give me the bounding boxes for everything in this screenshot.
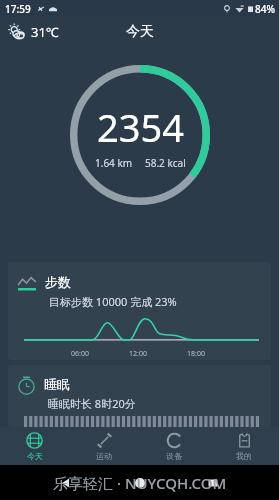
button[interactable]: Weather [7,22,59,42]
staticText: 睡眠时长 8时20分 [48,396,136,411]
other: 今天 [26,432,43,449]
staticText: 17:59 [5,2,31,16]
staticText: 睡眠 [44,376,70,392]
other: Recents [206,476,220,490]
staticText: 我的 [236,451,252,461]
button[interactable]: 运动 [69,427,139,465]
other: 我的 [236,432,253,449]
staticText: 运动 [96,451,112,461]
button[interactable]: 步数 [8,262,271,360]
staticText: 31℃ [31,23,59,41]
staticText: 乐享轻汇 · NUYCQH.COM [53,473,227,493]
other: Back [59,476,73,490]
staticText: 今天 [126,23,154,41]
other: Weather [7,22,27,42]
other: 设备 [166,432,183,449]
staticText: 2354 [97,101,184,153]
staticText: 06:00 [71,349,89,359]
staticText: 目标步数 10000 完成 23% [49,294,177,309]
other: Home [133,476,147,490]
staticText: 1.64 km [95,156,133,170]
staticText: 58.2 kcal [145,156,186,170]
staticText: 12:00 [129,349,147,359]
button[interactable]: 今天 [0,427,69,465]
other: 运动 [96,432,113,449]
staticText: 84% [255,2,275,16]
button[interactable]: 设备 [139,427,209,465]
button[interactable]: 睡眠 [8,365,271,427]
button[interactable]: 我的 [209,427,279,465]
staticText: 今天 [27,451,43,461]
staticText: 步数 [45,274,71,290]
button[interactable]: 2354 [70,65,210,205]
staticText: 设备 [166,451,182,461]
staticText: 18:00 [187,349,205,359]
